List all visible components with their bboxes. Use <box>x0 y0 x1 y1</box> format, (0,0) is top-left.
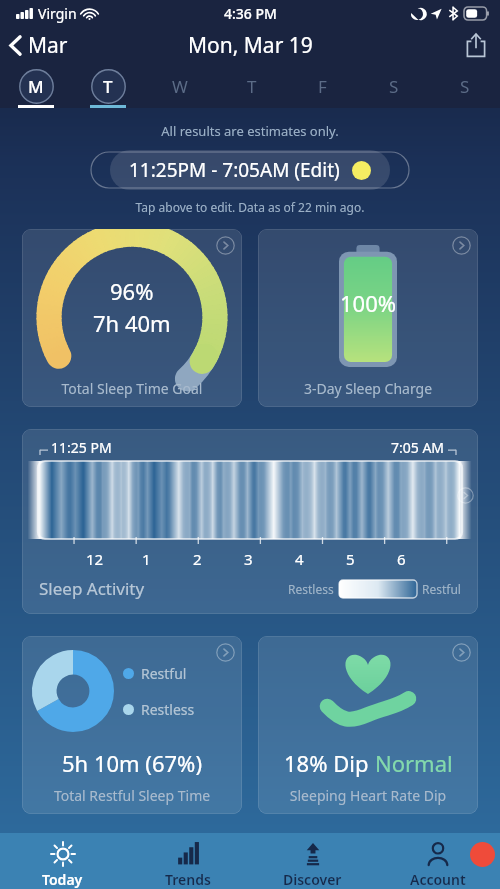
button[interactable]: Trends <box>125 833 250 889</box>
staticText: Restful <box>422 581 461 597</box>
staticText: Restful <box>141 664 187 683</box>
staticText: Restless <box>288 581 334 597</box>
staticText: Total Restful Sleep Time <box>22 786 242 805</box>
staticText: Discover <box>283 870 342 889</box>
button[interactable]: Restful <box>22 636 242 814</box>
staticText: S <box>460 75 470 98</box>
other: Details <box>452 236 471 255</box>
staticText: F <box>318 75 327 98</box>
staticText: Mon, Mar 19 <box>188 31 313 60</box>
button[interactable]: S <box>358 64 429 108</box>
staticText: S <box>389 75 399 98</box>
staticText: T <box>103 75 113 98</box>
staticText: 7h 40m <box>93 308 171 338</box>
staticText: Tap above to edit. Data as of 22 min ago… <box>0 199 500 215</box>
button[interactable]: 11:25PM - 7:05AM (Edit) <box>110 150 390 190</box>
staticText: 4:36 PM <box>224 4 277 23</box>
button[interactable]: S <box>429 64 500 108</box>
other: Details <box>216 236 235 255</box>
staticText: 1 <box>142 549 151 569</box>
button[interactable]: Today <box>0 833 125 889</box>
staticText: W <box>172 75 188 98</box>
other: Details <box>457 487 474 504</box>
staticText: Virgin <box>38 4 77 23</box>
staticText: Trends <box>165 870 211 889</box>
button[interactable]: Discover <box>250 833 375 889</box>
staticText: Total Sleep Time Goal <box>22 379 242 398</box>
staticText: 12 <box>86 549 104 569</box>
button[interactable]: Share <box>452 28 500 62</box>
button[interactable]: 96% <box>22 229 242 407</box>
staticText: 5h 10m (67%) <box>22 748 242 778</box>
staticText: Mar <box>28 31 68 60</box>
staticText: M <box>28 75 44 98</box>
staticText: 4 <box>295 549 304 569</box>
button[interactable]: 11:25 PM <box>22 429 478 614</box>
staticText: Sleep Activity <box>39 577 145 600</box>
staticText: 11:25 PM <box>51 438 112 457</box>
staticText: T <box>247 75 257 98</box>
button[interactable]: Account <box>375 833 500 889</box>
other: Details <box>452 643 471 662</box>
staticText: 5 <box>346 549 355 569</box>
staticText: Normal <box>375 748 453 778</box>
button[interactable]: 100% <box>258 229 478 407</box>
staticText: All results are estimates only. <box>0 122 500 140</box>
button[interactable]: 18% Dip <box>258 636 478 814</box>
staticText: Restless <box>141 700 195 719</box>
staticText: 3-Day Sleep Charge <box>258 379 478 398</box>
other: Details <box>216 643 235 662</box>
staticText: 6 <box>397 549 406 569</box>
staticText: 18% Dip <box>284 748 375 778</box>
staticText: Today <box>42 870 83 889</box>
staticText: 96% <box>110 276 154 306</box>
staticText: 100% <box>340 288 397 318</box>
button[interactable]: Mar <box>0 27 78 64</box>
staticText: 3 <box>244 549 253 569</box>
button[interactable]: T <box>216 64 287 108</box>
button[interactable]: T <box>72 64 144 108</box>
staticText: 11:25PM - 7:05AM (Edit) <box>129 157 340 183</box>
staticText: 7:05 AM <box>391 438 445 457</box>
button[interactable]: W <box>144 64 216 108</box>
staticText: 2 <box>193 549 202 569</box>
staticText: Account <box>410 870 466 889</box>
staticText: Sleeping Heart Rate Dip <box>258 786 478 805</box>
button[interactable]: F <box>287 64 358 108</box>
button[interactable]: M <box>0 64 72 108</box>
